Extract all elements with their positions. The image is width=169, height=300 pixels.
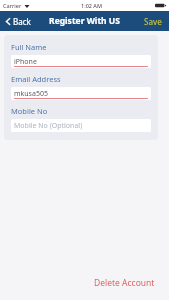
- staticText: Full Name: [11, 42, 47, 52]
- button[interactable]: Back: [3, 13, 33, 30]
- staticText: Register With US: [49, 15, 120, 27]
- staticText: iPhone: [14, 57, 37, 67]
- staticText: Carrier: [3, 2, 22, 9]
- button[interactable]: mkusa505: [11, 87, 151, 100]
- staticText: Mobile No (Optional): [14, 121, 83, 131]
- other: Back: [5, 17, 11, 26]
- button[interactable]: iPhone: [11, 55, 151, 68]
- staticText: Delete Account: [94, 277, 155, 289]
- staticText: Email Address: [11, 74, 61, 84]
- button[interactable]: Delete Account: [90, 274, 159, 292]
- staticText: mkusa505: [14, 89, 48, 99]
- button[interactable]: Mobile No (Optional): [11, 119, 151, 132]
- staticText: Back: [13, 16, 31, 27]
- staticText: Mobile No: [11, 106, 48, 116]
- staticText: Save: [144, 16, 162, 27]
- button[interactable]: Save: [141, 13, 165, 30]
- staticText: 1:02 AM: [81, 2, 103, 9]
